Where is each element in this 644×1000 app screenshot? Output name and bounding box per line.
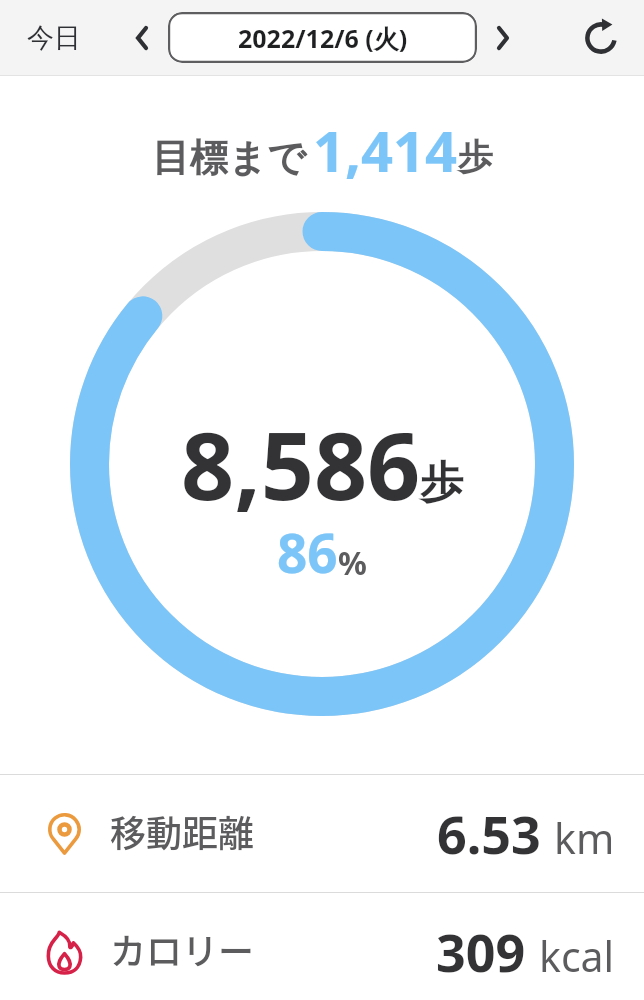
staticText: 6.53 — [437, 798, 541, 869]
staticText: 8,586 — [181, 401, 421, 528]
staticText: km — [554, 810, 615, 866]
staticText: kcal — [539, 928, 615, 984]
button[interactable]: Next day — [479, 0, 527, 76]
button[interactable]: 今日 — [6, 0, 102, 76]
staticText: カロリー — [110, 923, 255, 975]
staticText: % — [338, 541, 367, 585]
staticText: 歩 — [458, 135, 493, 179]
button[interactable]: カロリー — [0, 893, 644, 1000]
staticText: 今日 — [27, 21, 81, 55]
staticText: 移動距離 — [110, 805, 255, 857]
button[interactable]: 移動距離 — [0, 775, 644, 892]
staticText: 目標まで — [152, 134, 306, 182]
staticText: 2022/12/6 (火) — [238, 21, 408, 55]
button[interactable]: Previous day — [118, 0, 166, 76]
button[interactable]: 2022/12/6 (火) — [168, 12, 477, 63]
staticText: 86 — [277, 516, 338, 588]
staticText: 歩 — [420, 456, 463, 510]
staticText: 309 — [436, 916, 526, 987]
staticText: 1,414 — [313, 112, 458, 188]
button[interactable]: Refresh — [575, 0, 627, 76]
